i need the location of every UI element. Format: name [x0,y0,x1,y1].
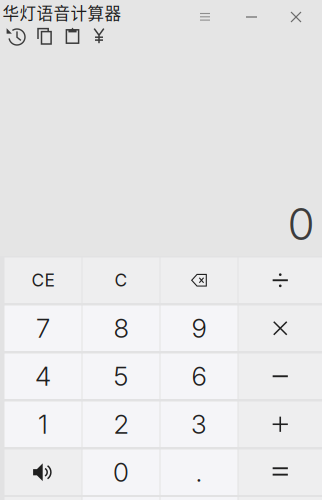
button[interactable]: 3 [160,401,237,447]
staticText: 2 [113,408,128,440]
staticText: C [114,270,127,291]
button[interactable]: 5 [82,353,159,399]
staticText: . [195,456,202,488]
button[interactable]: Equals [238,449,322,495]
staticText: 7 [36,312,50,344]
staticText: 华灯语音计算器 [2,0,121,24]
button[interactable]: Minimize [230,5,272,29]
button[interactable]: Menu [184,5,226,29]
staticText: 9 [191,312,206,344]
staticText: 0 [113,456,129,488]
button[interactable]: 2 [82,401,159,447]
button[interactable]: 9 [160,305,237,351]
staticText: CE [31,270,54,291]
button[interactable]: 8 [82,305,159,351]
staticText: 1 [38,408,48,440]
button[interactable]: Multiply [238,305,322,351]
button[interactable]: Divide [238,257,322,303]
button[interactable]: Close [275,5,317,29]
button[interactable]: 6 [160,353,237,399]
staticText: 3 [191,408,207,440]
button[interactable]: Subtract [238,353,322,399]
button[interactable]: 4 [4,353,81,399]
button[interactable]: Voice input [4,449,81,495]
button[interactable]: . [160,449,237,495]
button[interactable]: Paste [58,25,86,49]
staticText: 0 [287,197,314,251]
button[interactable]: 0 [82,449,159,495]
button[interactable]: Backspace [160,257,237,303]
staticText: 8 [113,312,128,344]
button[interactable]: CE [4,257,81,303]
staticText: 6 [191,360,206,392]
button[interactable]: History [2,25,30,49]
button[interactable]: C [82,257,159,303]
button[interactable]: 7 [4,305,81,351]
button[interactable]: Currency [85,25,113,49]
staticText: 4 [35,360,51,392]
staticText: 5 [113,360,128,392]
button[interactable]: Add [238,401,322,447]
button[interactable]: 1 [4,401,81,447]
button[interactable]: Copy [31,25,59,49]
